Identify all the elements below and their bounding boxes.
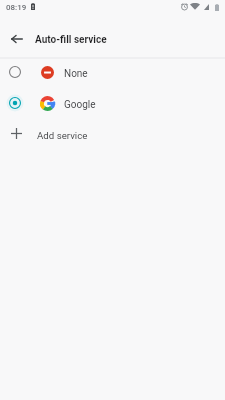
button[interactable]: Add service: [0, 118, 225, 148]
button[interactable]: Back: [5, 27, 29, 51]
staticText: 08:19: [6, 3, 27, 12]
button[interactable]: None: [0, 57, 225, 87]
button[interactable]: Google: [0, 88, 225, 118]
staticText: Auto-fill service: [35, 34, 107, 46]
staticText: Google: [64, 99, 96, 111]
staticText: None: [64, 68, 88, 80]
staticText: Add service: [37, 130, 88, 141]
